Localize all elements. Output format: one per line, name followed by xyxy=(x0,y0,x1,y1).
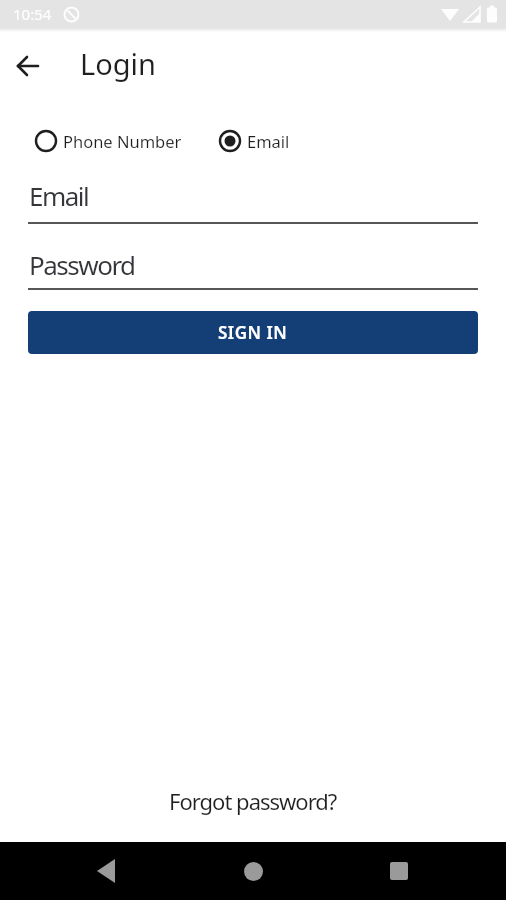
button[interactable] xyxy=(390,862,408,880)
button[interactable]: SIGN IN xyxy=(28,311,478,354)
staticText: Password xyxy=(29,247,135,282)
staticText: SIGN IN xyxy=(218,321,288,344)
button[interactable] xyxy=(244,862,263,881)
button[interactable]: Email xyxy=(218,129,290,153)
staticText: Email xyxy=(29,178,89,213)
button[interactable]: Forgot password? xyxy=(169,786,337,816)
staticText: Phone Number xyxy=(63,130,182,152)
button[interactable]: Phone Number xyxy=(34,129,182,153)
staticText: Login xyxy=(80,44,156,83)
button[interactable] xyxy=(94,859,118,883)
button[interactable] xyxy=(14,52,42,80)
staticText: Email xyxy=(247,130,290,152)
staticText: 10:54 xyxy=(13,4,52,24)
